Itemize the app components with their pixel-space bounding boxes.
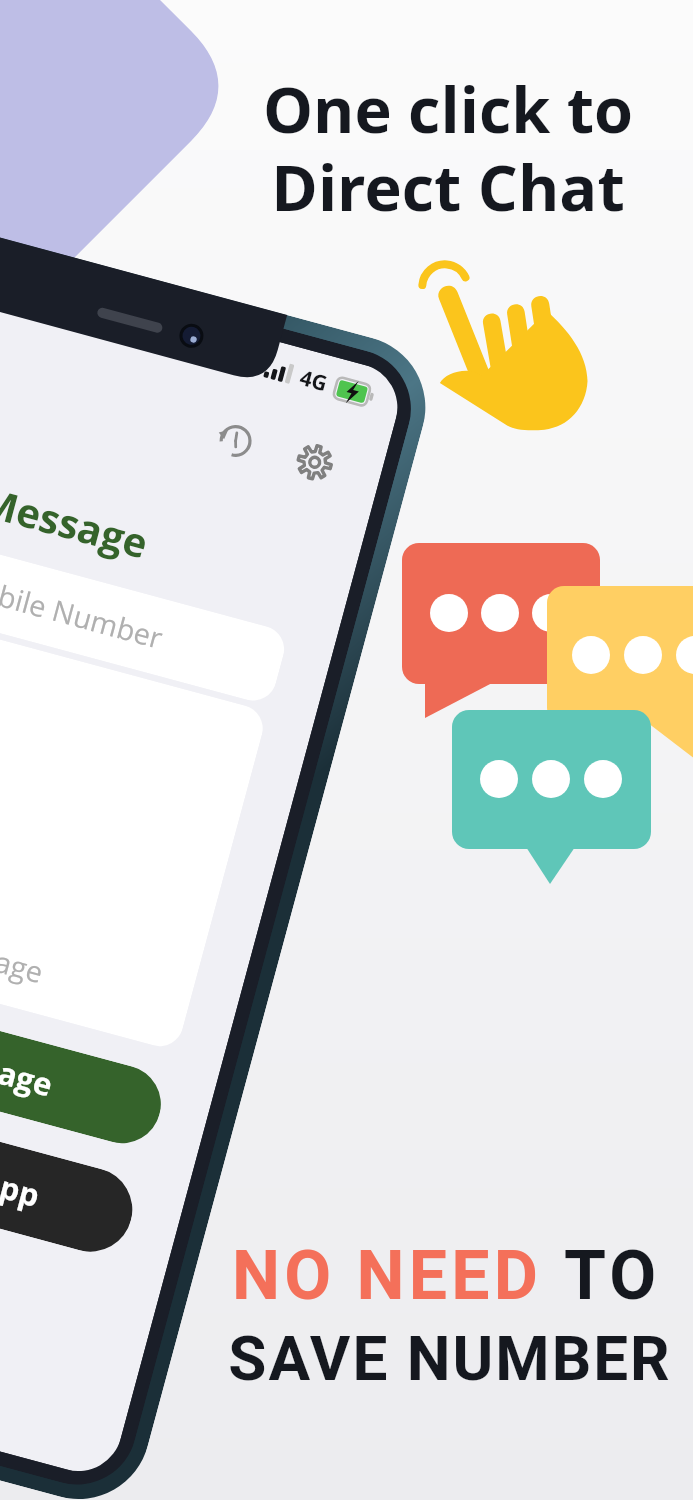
staticText: TO <box>564 1236 661 1316</box>
staticText: Direct Chat <box>246 144 650 230</box>
staticText: Send Message <box>0 445 155 570</box>
button[interactable]: Settings <box>282 429 348 495</box>
staticText: One click to <box>246 66 650 152</box>
button[interactable]: Open WhatsApp <box>0 1065 142 1261</box>
button[interactable]: Send Message <box>0 962 170 1152</box>
staticText: NO NEED <box>232 1236 564 1316</box>
button[interactable]: History <box>202 408 269 474</box>
button[interactable]: Tap <box>400 240 610 450</box>
staticText: SAVE NUMBER <box>224 1322 676 1395</box>
staticText: 4G <box>297 363 331 398</box>
button[interactable]: Add Quick Message <box>0 597 268 1052</box>
staticText: Open WhatsApp <box>0 1110 45 1216</box>
staticText: Send Message <box>0 1009 58 1106</box>
staticText: Add Quick Message <box>0 885 48 992</box>
button[interactable]: Enter Mobile Number <box>0 518 289 706</box>
staticText: Enter Mobile Number <box>0 543 168 657</box>
